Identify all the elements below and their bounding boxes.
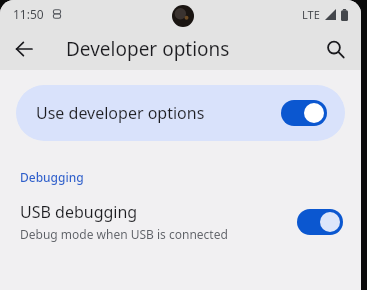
staticText: 11:50 bbox=[13, 6, 44, 22]
button[interactable]: Toggle on bbox=[297, 209, 343, 235]
button[interactable]: Toggle on bbox=[281, 100, 327, 126]
staticText: Use developer options bbox=[36, 102, 281, 124]
staticText: LTE bbox=[302, 7, 320, 22]
button[interactable]: Use developer options bbox=[16, 85, 345, 141]
staticText: Debugging bbox=[20, 169, 84, 185]
button[interactable]: Back bbox=[6, 31, 42, 67]
button[interactable]: USB debugging bbox=[0, 199, 361, 252]
staticText: Developer options bbox=[66, 36, 230, 62]
staticText: Debug mode when USB is connected bbox=[20, 226, 228, 242]
button[interactable]: Search bbox=[317, 31, 353, 67]
staticText: USB debugging bbox=[20, 201, 138, 223]
